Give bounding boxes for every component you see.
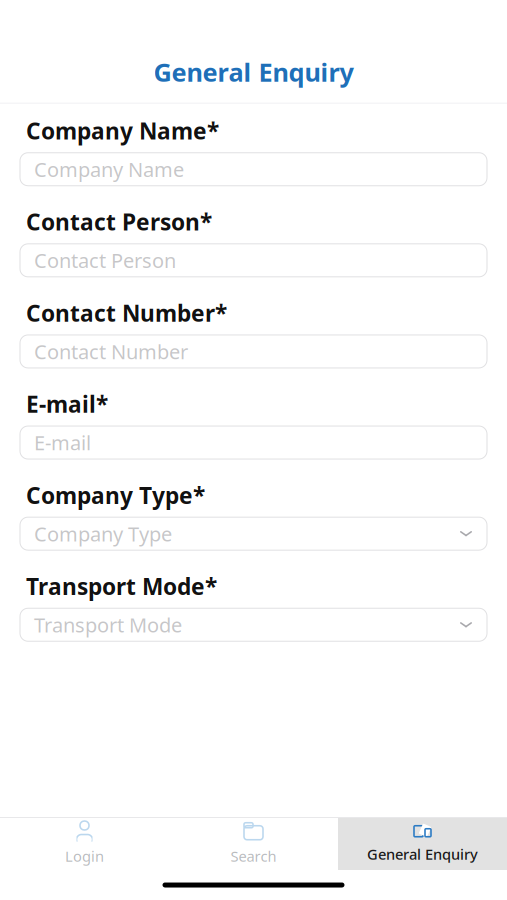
button[interactable]: E-mail	[20, 426, 487, 459]
staticText: Company Name	[34, 156, 184, 183]
staticText: Company Type*	[26, 480, 205, 510]
button[interactable]: General Enquiry	[338, 818, 507, 870]
staticText: General Enquiry	[367, 844, 478, 864]
staticText: Contact Person*	[26, 207, 212, 237]
staticText: Contact Person	[34, 247, 176, 274]
staticText: Company Name*	[26, 116, 219, 146]
button[interactable]: Contact Number	[20, 335, 487, 368]
button[interactable]: Company Type	[20, 517, 487, 550]
staticText: Company Type	[34, 520, 172, 547]
staticText: Login	[65, 846, 104, 866]
staticText: E-mail*	[26, 389, 108, 419]
staticText: E-mail	[34, 429, 91, 456]
button[interactable]: Search	[169, 818, 338, 870]
button[interactable]: Login	[0, 818, 169, 870]
staticText: Transport Mode*	[26, 571, 217, 601]
staticText: Transport Mode	[34, 611, 182, 638]
button[interactable]: Contact Person	[20, 244, 487, 277]
staticText: General Enquiry	[153, 55, 353, 89]
staticText: Contact Number*	[26, 298, 227, 328]
button[interactable]: Transport Mode	[20, 608, 487, 641]
staticText: Contact Number	[34, 338, 188, 365]
staticText: Search	[230, 846, 276, 866]
button[interactable]: Company Name	[20, 153, 487, 186]
